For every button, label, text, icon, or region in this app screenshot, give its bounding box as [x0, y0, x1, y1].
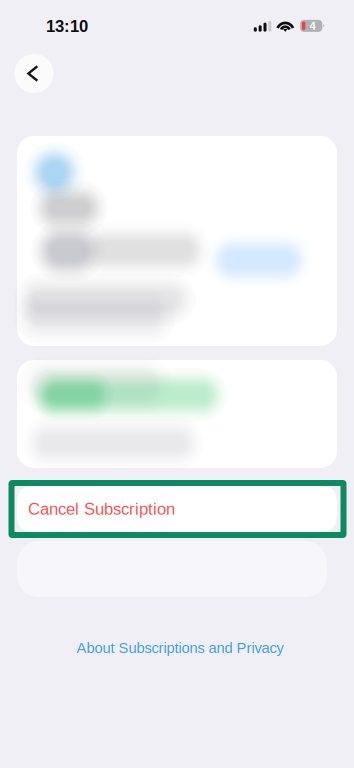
staticText: 4	[309, 20, 315, 32]
staticText: 13:10	[46, 17, 88, 36]
button[interactable]: About Subscriptions and Privacy	[3, 638, 354, 658]
button[interactable]: Back	[14, 54, 53, 93]
button[interactable]: Cancel Subscription	[17, 486, 337, 532]
staticText: Cancel Subscription	[28, 500, 175, 518]
staticText: About Subscriptions and Privacy	[76, 640, 283, 656]
